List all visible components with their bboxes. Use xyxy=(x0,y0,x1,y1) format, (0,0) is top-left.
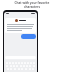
staticText: Chat with your favorite characters xyxy=(1,1,63,9)
